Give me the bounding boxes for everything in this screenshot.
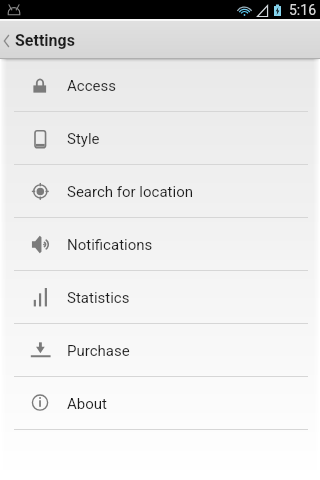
staticText: 5:16 [289,2,316,18]
other: Back [4,35,9,47]
staticText: Purchase [67,342,130,360]
button[interactable]: Style [0,112,320,164]
staticText: Notifications [67,236,153,254]
staticText: About [67,395,107,413]
staticText: Search for location [67,183,193,201]
staticText: Statistics [67,289,130,307]
button[interactable]: About [0,377,320,429]
other: Notification [8,4,20,15]
button[interactable]: Back [0,21,75,58]
button[interactable]: Statistics [0,271,320,323]
button[interactable]: Purchase [0,324,320,376]
button[interactable]: Search for location [0,165,320,217]
staticText: Settings [15,31,75,50]
button[interactable]: Access [0,59,320,111]
button[interactable]: Notifications [0,218,320,270]
staticText: Access [67,77,116,95]
staticText: Style [67,130,100,148]
